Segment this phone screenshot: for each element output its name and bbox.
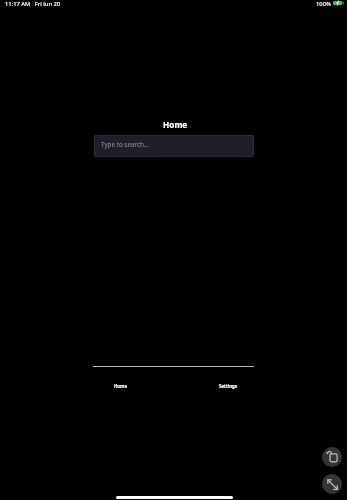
staticText: 11:17 AM Fri Jun 20	[5, 0, 61, 6]
staticText: 100%	[316, 0, 331, 6]
staticText: Home	[114, 383, 128, 389]
button[interactable]: Resize	[322, 474, 342, 494]
button[interactable]: Home	[111, 381, 131, 391]
staticText: Type to search...	[101, 140, 149, 149]
button[interactable]: Picture in picture	[322, 447, 342, 467]
staticText: Home	[163, 119, 188, 130]
button[interactable]: Type to search...	[95, 136, 253, 156]
button[interactable]: Settings	[216, 381, 240, 391]
staticText: Settings	[219, 383, 237, 389]
